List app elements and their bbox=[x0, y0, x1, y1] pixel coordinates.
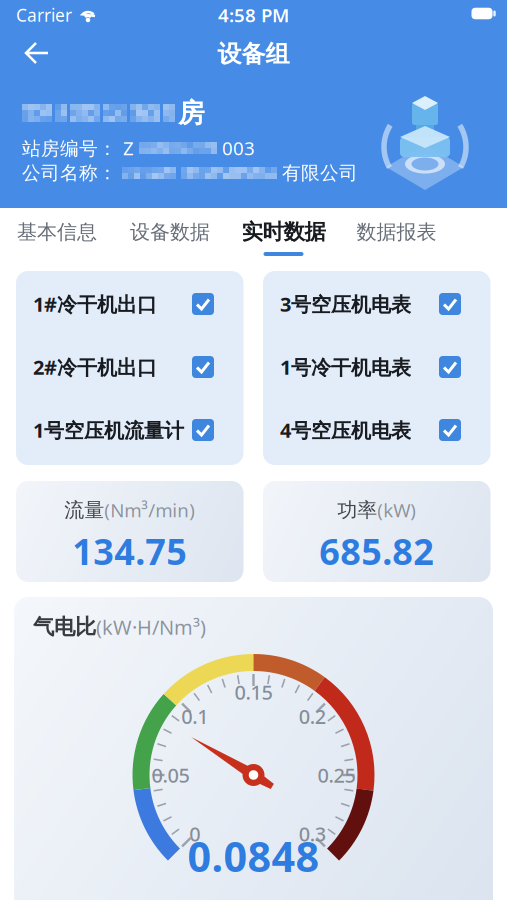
button[interactable]: 2#冷干机出口 bbox=[33, 347, 214, 387]
staticText: 1#冷干机出口 bbox=[33, 291, 157, 317]
button[interactable]: 实时数据 bbox=[231, 215, 335, 249]
staticText: 气电比 bbox=[33, 614, 96, 640]
staticText: Carrier bbox=[16, 3, 72, 26]
button[interactable]: 数据报表 bbox=[346, 215, 446, 249]
button[interactable]: 设备数据 bbox=[120, 215, 220, 249]
staticText: (kW) bbox=[377, 498, 416, 522]
staticText: 0.3 bbox=[299, 820, 326, 847]
staticText: 0.05 bbox=[151, 762, 189, 788]
button[interactable]: 1号冷干机电表 bbox=[280, 347, 461, 387]
staticText: 4:58 PM bbox=[218, 3, 289, 27]
button[interactable]: 3号空压机电表 bbox=[280, 284, 461, 324]
button[interactable]: Back bbox=[17, 41, 57, 65]
staticText: 有限公司 bbox=[282, 161, 358, 184]
staticText: 实时数据 bbox=[241, 219, 325, 245]
staticText: 设备组 bbox=[217, 39, 289, 69]
staticText: 003 bbox=[222, 136, 255, 160]
staticText: 4号空压机电表 bbox=[280, 417, 411, 443]
staticText: 房 bbox=[178, 97, 205, 129]
button[interactable]: 基本信息 bbox=[7, 215, 107, 249]
staticText: 0 bbox=[189, 820, 200, 847]
staticText: 0.15 bbox=[234, 679, 272, 705]
button[interactable]: 4号空压机电表 bbox=[280, 410, 461, 450]
staticText: (kW·H/Nm³) bbox=[96, 614, 206, 640]
staticText: 134.75 bbox=[72, 527, 187, 575]
staticText: 1号空压机流量计 bbox=[33, 417, 184, 443]
staticText: 功率 bbox=[337, 498, 377, 522]
staticText: 设备数据 bbox=[130, 220, 210, 244]
staticText: 站房编号： Z bbox=[22, 136, 134, 160]
staticText: 685.82 bbox=[319, 527, 434, 575]
button[interactable]: 1号空压机流量计 bbox=[33, 410, 214, 450]
staticText: 2#冷干机出口 bbox=[33, 354, 157, 380]
staticText: 0.2 bbox=[299, 703, 326, 730]
staticText: (Nm³/min) bbox=[104, 498, 195, 522]
staticText: 3号空压机电表 bbox=[280, 291, 411, 317]
staticText: 0.1 bbox=[181, 703, 208, 730]
staticText: 基本信息 bbox=[17, 220, 97, 244]
button[interactable]: 1#冷干机出口 bbox=[33, 284, 214, 324]
staticText: 0.0848 bbox=[187, 829, 319, 883]
staticText: 0.25 bbox=[317, 762, 355, 788]
staticText: 公司名称： bbox=[22, 161, 117, 184]
staticText: 流量 bbox=[64, 498, 104, 522]
staticText: 1号冷干机电表 bbox=[280, 354, 411, 380]
staticText: 数据报表 bbox=[356, 220, 436, 244]
